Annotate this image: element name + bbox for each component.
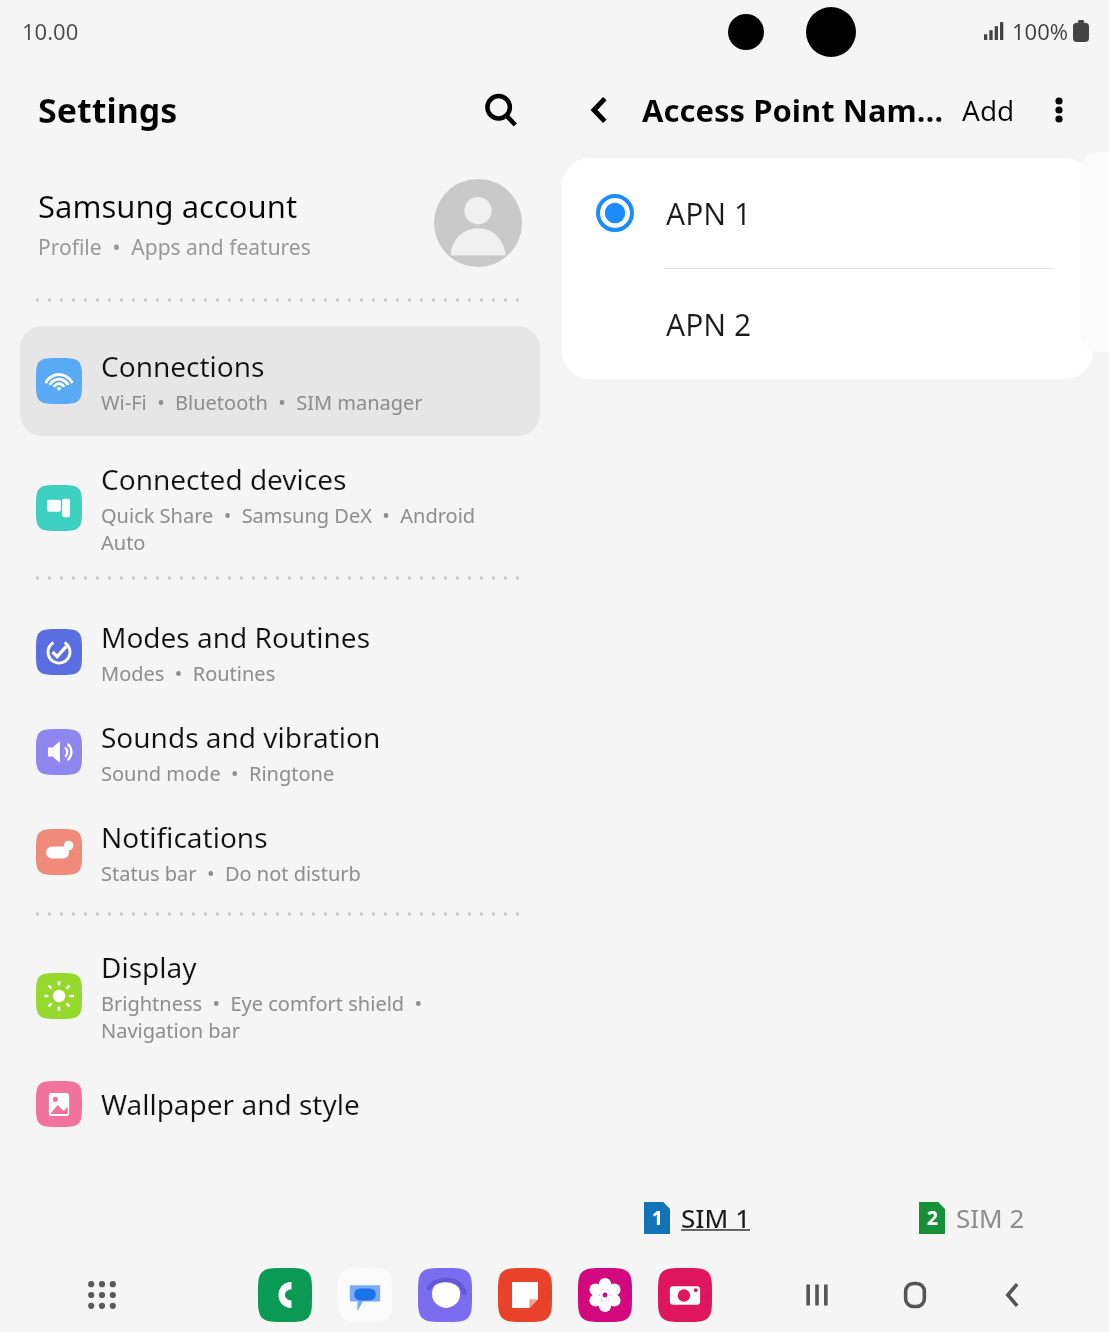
button[interactable]: Display — [0, 938, 560, 1054]
staticText: Status bar • Do not disturb — [101, 860, 361, 887]
staticText: Wi-Fi • Bluetooth • SIM manager — [101, 389, 423, 416]
button[interactable]: Samsung account — [0, 158, 560, 288]
staticText: Modes and Routines — [101, 618, 371, 656]
button[interactable]: Messages — [338, 1268, 392, 1322]
button[interactable]: Navigate up — [572, 82, 628, 138]
staticText: Connected devices — [101, 460, 347, 498]
staticText: 2 — [927, 1205, 938, 1231]
button[interactable]: Modes and Routines — [0, 602, 560, 702]
staticText: 1 — [652, 1205, 663, 1231]
staticText: APN 2 — [666, 304, 752, 345]
staticText: Samsung account — [38, 185, 298, 227]
staticText: Quick Share • Samsung DeX • Android Auto — [101, 502, 476, 556]
staticText: Sound mode • Ringtone — [101, 760, 335, 787]
button[interactable]: Notes — [498, 1268, 552, 1322]
button[interactable]: Phone — [258, 1268, 312, 1322]
button[interactable]: Gallery — [578, 1268, 632, 1322]
button[interactable]: Wallpaper and style — [0, 1054, 560, 1154]
staticText: Notifications — [101, 818, 268, 856]
button[interactable]: Search — [474, 83, 528, 137]
staticText: APN 1 — [666, 193, 752, 234]
button[interactable]: Notifications — [0, 802, 560, 902]
staticText: Connections — [101, 347, 265, 385]
button[interactable]: 1 — [560, 1176, 834, 1258]
staticText: 100% — [1012, 16, 1069, 46]
button[interactable]: Sounds and vibration — [0, 702, 560, 802]
button[interactable]: Connected devices — [0, 450, 560, 566]
staticText: Settings — [38, 87, 178, 133]
staticText: Wallpaper and style — [101, 1085, 360, 1123]
staticText: Sounds and vibration — [101, 718, 381, 756]
button[interactable]: Connections — [20, 326, 540, 436]
staticText: Add — [962, 91, 1015, 129]
button[interactable]: Recents — [789, 1267, 845, 1323]
button[interactable]: More options — [1035, 86, 1083, 134]
staticText: Modes • Routines — [101, 660, 276, 687]
button[interactable]: Camera — [658, 1268, 712, 1322]
staticText: SIM 1 — [681, 1200, 751, 1235]
staticText: Display — [101, 948, 197, 986]
button[interactable]: 2 — [834, 1176, 1109, 1258]
staticText: SIM 2 — [956, 1200, 1025, 1235]
button[interactable]: Apps — [76, 1269, 128, 1321]
staticText: Access Point Nam… — [642, 89, 944, 131]
button[interactable]: Internet — [418, 1268, 472, 1322]
staticText: Brightness • Eye comfort shield • Naviga… — [101, 990, 423, 1044]
button[interactable]: Home — [887, 1267, 943, 1323]
button[interactable]: APN 2 — [562, 269, 1093, 379]
button[interactable]: APN 1 — [562, 158, 1093, 268]
staticText: 10.00 — [22, 16, 79, 46]
staticText: Profile • Apps and features — [38, 233, 311, 262]
button[interactable]: Add — [958, 91, 1019, 129]
button[interactable]: Back — [985, 1267, 1041, 1323]
